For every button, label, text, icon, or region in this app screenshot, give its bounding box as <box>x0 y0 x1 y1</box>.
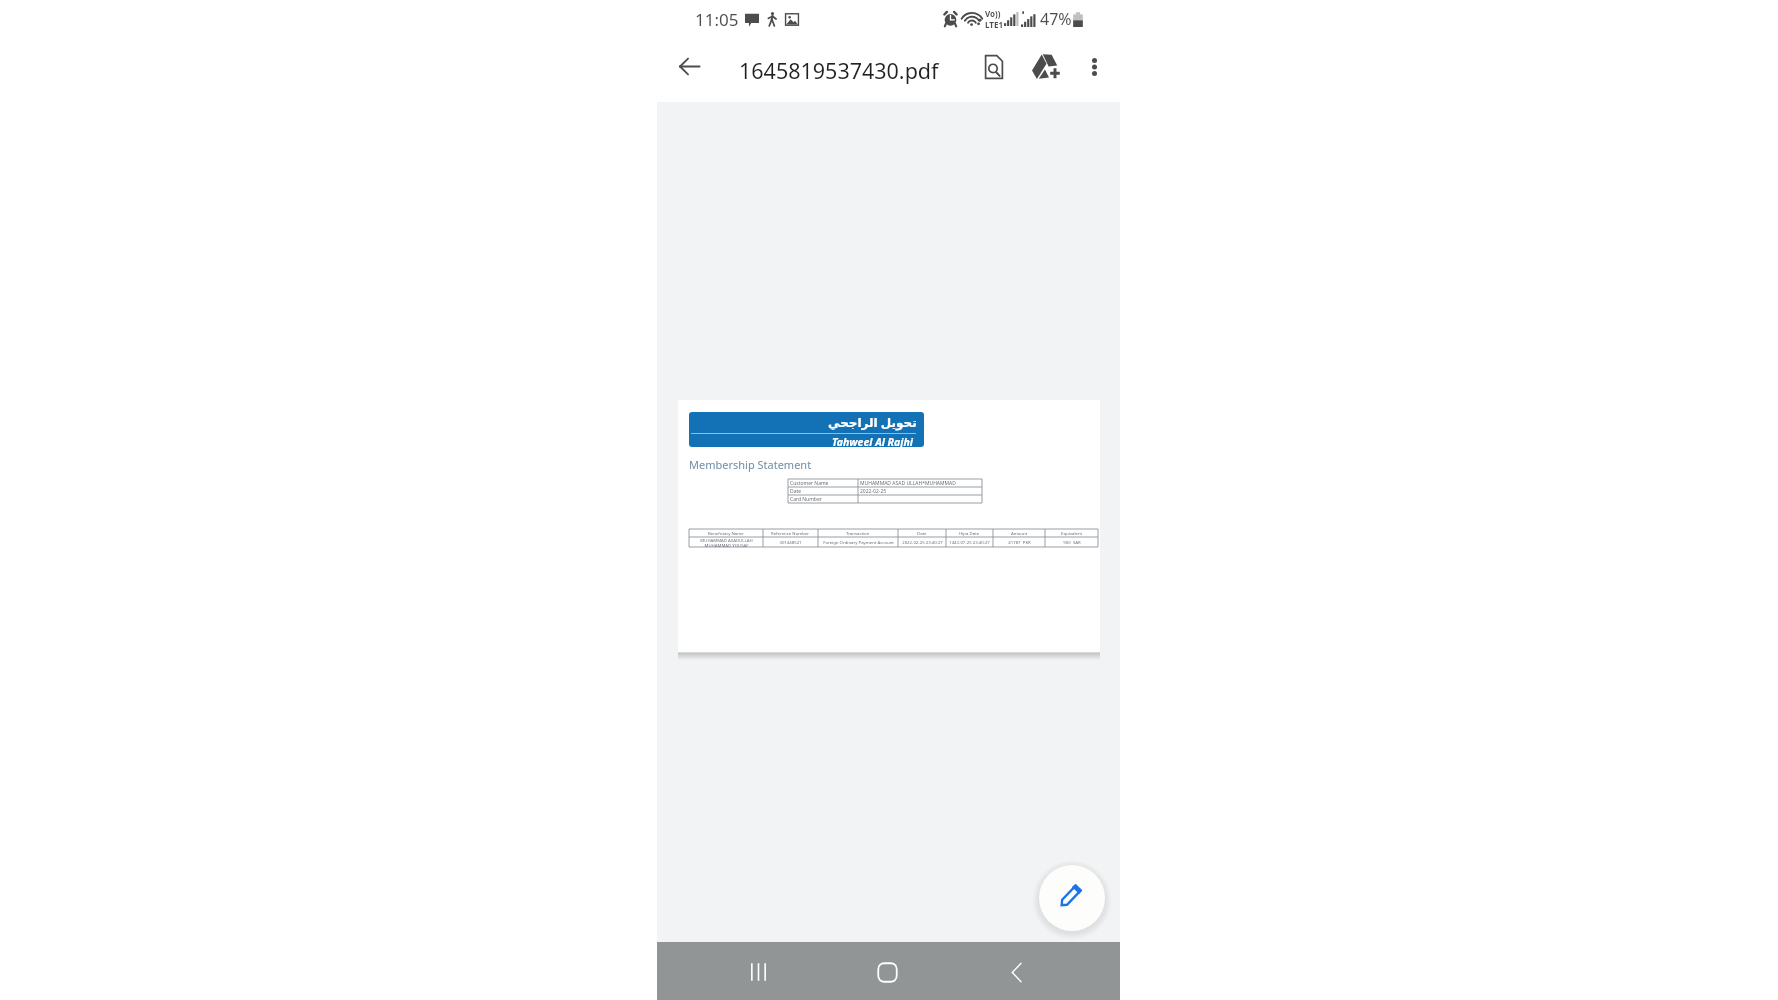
button[interactable]: Back <box>667 44 712 89</box>
staticText: Beneficiary Name <box>708 530 744 536</box>
staticText: 41787 PKR <box>1008 539 1031 545</box>
staticText: Membership Statement <box>689 457 812 472</box>
button[interactable]: More options <box>1074 46 1115 87</box>
staticText: Amount <box>1011 530 1028 536</box>
staticText: Hijra Date <box>959 530 980 536</box>
button[interactable]: Home <box>848 942 926 1000</box>
staticText: Foreign Ordinary Payment Account <box>823 539 894 545</box>
staticText: تحويل الراجحي <box>828 414 917 430</box>
button[interactable]: Edit <box>1039 865 1105 931</box>
staticText: Tahweel Al Rajhi <box>832 435 913 447</box>
staticText: 301448521 <box>779 539 802 545</box>
staticText: 1645819537430.pdf <box>739 56 939 85</box>
staticText: Customer Name <box>790 480 829 487</box>
staticText: Reference Number <box>771 530 810 536</box>
button[interactable]: Save to Drive <box>1023 44 1068 89</box>
staticText: Equivalent <box>1061 530 1083 536</box>
staticText: Date <box>790 488 802 495</box>
staticText: LTE1 <box>985 19 1003 30</box>
staticText: MUHAMMAD ASADULLAH MUHAMMAD YOUSAF <box>700 537 753 547</box>
staticText: Card Number <box>790 496 822 503</box>
staticText: 11:05 <box>695 8 739 31</box>
staticText: 47% <box>1040 8 1072 30</box>
staticText: 2022-02-25 23:40:27 <box>902 539 943 545</box>
button[interactable]: Back <box>977 942 1055 1000</box>
staticText: 900 SAR <box>1063 539 1081 545</box>
staticText: Transaction <box>846 530 870 536</box>
button[interactable]: Recent apps <box>719 942 797 1000</box>
staticText: Vo)) <box>985 8 1001 19</box>
button[interactable]: Find in document <box>971 44 1016 89</box>
staticText: 1443-07-25 23:40:27 <box>949 539 990 545</box>
staticText: Date <box>917 530 927 536</box>
staticText: 2022-02-25 <box>860 488 887 495</box>
staticText: MUHAMMAD ASAD ULLAH*MUHAMMAD <box>860 480 956 487</box>
